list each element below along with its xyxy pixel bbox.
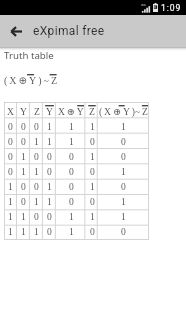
button[interactable]: Back [0, 15, 33, 47]
staticText: 0 [47, 226, 52, 237]
staticText: 1 [121, 211, 126, 222]
staticText: eXpimal free [33, 24, 105, 38]
staticText: 1 [90, 151, 95, 162]
staticText: 1 [121, 121, 126, 132]
staticText: 0 [8, 166, 13, 177]
staticText: 1 [8, 211, 13, 222]
staticText: 1 [21, 226, 26, 237]
staticText: X ⊕ Y [58, 106, 84, 117]
staticText: 1:09 [161, 3, 182, 13]
staticText: 1 [47, 121, 52, 132]
staticText: 0 [121, 181, 126, 192]
staticText: 0 [69, 151, 74, 162]
staticText: ( X ⊕ Y ) ~ Z [4, 75, 58, 87]
staticText: 1 [90, 211, 95, 222]
staticText: 1 [8, 226, 13, 237]
staticText: 1 [69, 226, 74, 237]
staticText: 0 [21, 196, 26, 207]
staticText: 1 [47, 196, 52, 207]
staticText: 1 [34, 166, 39, 177]
staticText: 1 [8, 181, 13, 192]
staticText: 1 [21, 151, 26, 162]
staticText: Y [20, 106, 27, 117]
staticText: 0 [69, 196, 74, 207]
staticText: 1 [47, 181, 52, 192]
staticText: 0 [90, 136, 95, 147]
staticText: 0 [121, 151, 126, 162]
staticText: 1 [69, 211, 74, 222]
staticText: Z [34, 106, 40, 117]
staticText: 0 [47, 151, 52, 162]
staticText: 0 [47, 211, 52, 222]
staticText: 1 [34, 196, 39, 207]
staticText: 0 [34, 181, 39, 192]
staticText: Y [46, 106, 53, 117]
staticText: Truth table [4, 49, 54, 62]
staticText: 0 [121, 226, 126, 237]
staticText: ( X ⊕ Y )~ Z [99, 106, 148, 117]
staticText: 1 [121, 196, 126, 207]
staticText: 0 [34, 151, 39, 162]
staticText: 0 [8, 136, 13, 147]
staticText: 1 [121, 166, 126, 177]
staticText: 1 [21, 211, 26, 222]
staticText: 1 [21, 166, 26, 177]
staticText: 1 [8, 196, 13, 207]
staticText: 0 [21, 136, 26, 147]
staticText: 1 [34, 136, 39, 147]
staticText: Z [89, 106, 95, 117]
staticText: 0 [8, 151, 13, 162]
staticText: 0 [121, 136, 126, 147]
staticText: 0 [69, 166, 74, 177]
staticText: 1 [34, 226, 39, 237]
staticText: 0 [21, 121, 26, 132]
staticText: 0 [21, 181, 26, 192]
staticText: 1 [90, 181, 95, 192]
staticText: 0 [90, 226, 95, 237]
staticText: 1 [69, 121, 74, 132]
staticText: 0 [34, 121, 39, 132]
staticText: 1 [69, 136, 74, 147]
staticText: 0 [90, 196, 95, 207]
staticText: 0 [69, 181, 74, 192]
staticText: 0 [8, 121, 13, 132]
staticText: 0 [47, 166, 52, 177]
staticText: 1 [47, 136, 52, 147]
staticText: 1 [90, 121, 95, 132]
staticText: 0 [90, 166, 95, 177]
staticText: 0 [34, 211, 39, 222]
staticText: X [7, 106, 14, 117]
